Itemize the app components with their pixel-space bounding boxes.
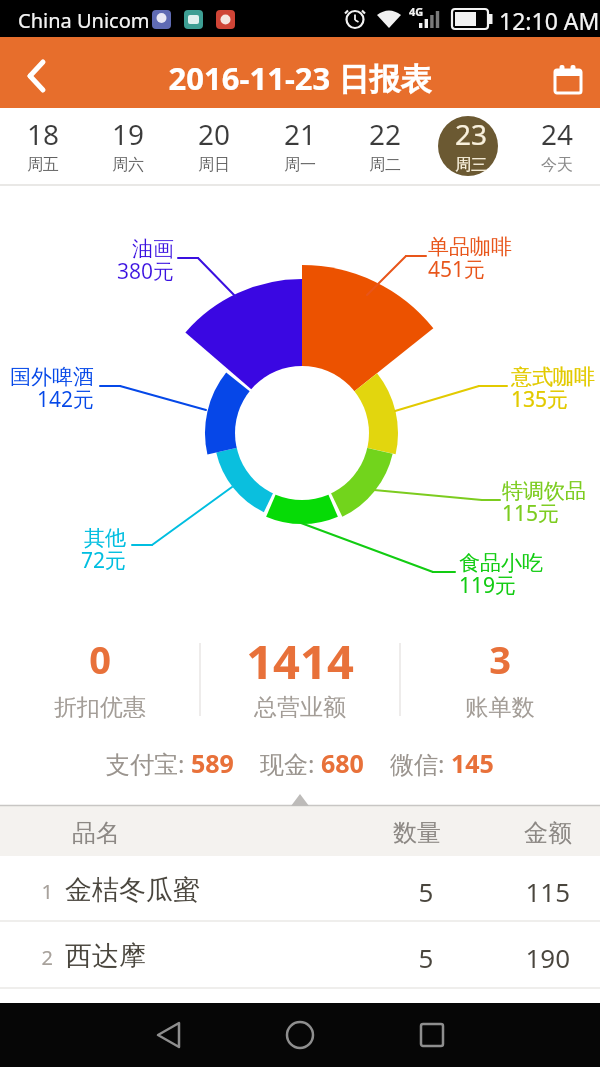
staticText: 19 [112, 115, 145, 153]
staticText: 现金: [260, 747, 321, 780]
button[interactable] [270, 780, 330, 808]
button[interactable] [10, 48, 65, 103]
staticText: 20 [198, 115, 231, 153]
staticText: 5 [386, 874, 466, 909]
staticText: 品名 [72, 818, 120, 848]
staticText: 账单数 [400, 693, 600, 722]
staticText: 周六 [112, 155, 144, 175]
staticText: 总营业额 [200, 693, 400, 722]
button[interactable] [140, 1010, 196, 1066]
staticText: 23 [455, 115, 488, 153]
staticText: 24 [541, 115, 574, 153]
staticText: 21 [284, 115, 317, 153]
button[interactable]: 20 [171, 108, 257, 185]
staticText: 周二 [369, 155, 401, 175]
staticText: 周三 [455, 155, 487, 175]
button[interactable] [404, 1010, 460, 1066]
staticText: 金额 [524, 818, 572, 848]
button[interactable]: 21 [257, 108, 343, 185]
button[interactable]: 1 [0, 856, 600, 921]
button[interactable]: 19 [85, 108, 171, 185]
staticText: 国外啤酒 142元 [0, 364, 94, 414]
staticText: 2 [33, 944, 53, 971]
staticText: 3 [400, 633, 600, 685]
staticText: 680 [321, 746, 364, 780]
button[interactable]: 24 [514, 108, 600, 185]
staticText: 4G [409, 4, 424, 19]
staticText: 支付宝: [106, 747, 191, 780]
staticText: 周日 [198, 155, 230, 175]
staticText: 数量 [393, 818, 441, 848]
staticText: 油画 380元 [74, 236, 174, 286]
staticText: 22 [369, 115, 402, 153]
staticText: 5 [386, 940, 466, 975]
staticText: 微信: [390, 747, 451, 780]
staticText: 115 [470, 874, 570, 909]
staticText: 食品小吃 119元 [459, 550, 543, 600]
staticText: 单品咖啡 451元 [428, 234, 512, 284]
staticText: 其他 72元 [26, 525, 126, 575]
staticText: 190 [470, 940, 570, 975]
staticText: 今天 [541, 155, 573, 175]
staticText: 折扣优惠 [0, 693, 200, 722]
button[interactable]: 23 [428, 108, 514, 185]
staticText: 1414 [200, 629, 400, 693]
staticText: 金桔冬瓜蜜 [65, 873, 200, 907]
staticText: 周一 [284, 155, 316, 175]
button[interactable] [272, 1010, 328, 1066]
staticText: 2016-11-23 日报表 [0, 57, 600, 99]
staticText: 1 [33, 878, 53, 905]
staticText: 意式咖啡 135元 [511, 364, 595, 414]
button[interactable]: 18 [0, 108, 86, 185]
staticText: 周五 [27, 155, 59, 175]
staticText: 西达摩 [65, 939, 146, 973]
staticText: China Unicom [18, 7, 150, 34]
button[interactable] [540, 50, 595, 105]
staticText: 145 [451, 746, 494, 780]
staticText: 589 [191, 746, 234, 780]
staticText: 特调饮品 115元 [502, 478, 586, 528]
staticText: 12:10 AM [499, 5, 600, 36]
button[interactable]: 22 [342, 108, 428, 185]
staticText: 0 [0, 633, 200, 685]
button[interactable]: 2 [0, 922, 600, 987]
staticText: 18 [27, 115, 60, 153]
